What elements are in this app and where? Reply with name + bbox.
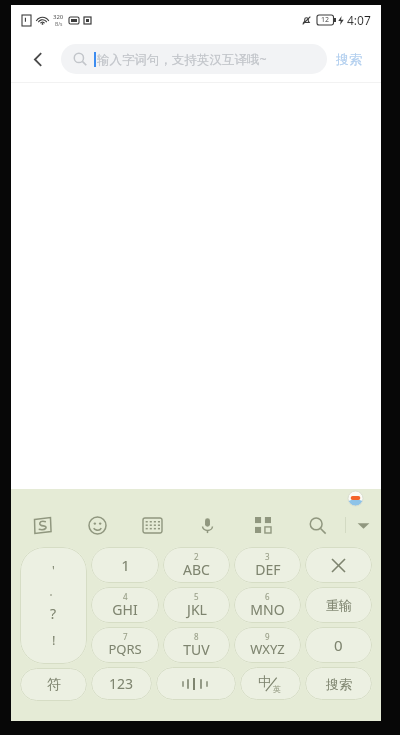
staticText: 中	[258, 673, 271, 689]
button[interactable]: PQRS	[91, 627, 159, 663]
button[interactable]: 搜索	[327, 45, 371, 73]
staticText: 2	[194, 551, 199, 562]
staticText: 9	[265, 631, 270, 642]
staticText: ABC	[183, 560, 210, 579]
button[interactable]: Search	[290, 507, 345, 543]
button[interactable]: 1	[91, 547, 159, 583]
staticText: 0	[334, 635, 343, 655]
button[interactable]: 符	[20, 668, 87, 701]
staticText: GHI	[112, 600, 138, 619]
button[interactable]: 0	[305, 627, 372, 663]
staticText: !	[52, 631, 56, 649]
button[interactable]: GHI	[91, 587, 159, 623]
staticText: DEF	[255, 560, 281, 579]
staticText: 重输	[326, 597, 352, 613]
staticText: 4	[123, 591, 128, 602]
staticText: 5	[194, 591, 199, 602]
button[interactable]: 输入字词句，支持英汉互译哦~	[61, 44, 327, 74]
staticText: 8	[194, 631, 199, 642]
staticText: WXYZ	[250, 640, 285, 658]
button[interactable]: Emoji	[70, 507, 125, 543]
staticText: 6	[265, 591, 270, 602]
staticText: ?	[50, 604, 57, 623]
button[interactable]: Voice input	[180, 507, 235, 543]
button[interactable]: JKL	[163, 587, 230, 623]
staticText: B/s	[55, 21, 63, 28]
button[interactable]: MNO	[234, 587, 301, 623]
button[interactable]: ABC	[163, 547, 230, 583]
button[interactable]: 搜索	[305, 667, 372, 700]
staticText: 搜索	[336, 51, 362, 67]
staticText: 4:07	[347, 12, 371, 28]
button[interactable]: Keyboard layout	[125, 507, 180, 543]
button[interactable]: Space	[156, 667, 236, 700]
staticText: 123	[109, 674, 134, 693]
button[interactable]: Punctuation	[20, 547, 87, 664]
button[interactable]: 重输	[305, 587, 372, 623]
button[interactable]: Sogou input	[15, 507, 70, 543]
staticText: 1	[121, 555, 130, 575]
staticText: 7	[123, 631, 128, 642]
staticText: '	[52, 562, 55, 578]
staticText: 符	[47, 676, 61, 694]
button[interactable]: Delete	[305, 547, 372, 583]
button[interactable]: Apps	[235, 507, 290, 543]
staticText: 320	[53, 13, 64, 21]
staticText: 输入字词句，支持英汉互译哦~	[97, 51, 267, 68]
button[interactable]: Sogou	[348, 491, 363, 506]
staticText: 搜索	[326, 676, 352, 692]
button[interactable]: DEF	[234, 547, 301, 583]
staticText: 3	[265, 551, 270, 562]
staticText: TUV	[183, 640, 210, 659]
button[interactable]: 123	[91, 667, 152, 700]
button[interactable]: TUV	[163, 627, 230, 663]
staticText: PQRS	[108, 640, 142, 658]
staticText: 英	[273, 684, 281, 694]
button[interactable]: WXYZ	[234, 627, 301, 663]
button[interactable]: Hide keyboard	[346, 507, 381, 543]
staticText: 。	[49, 586, 58, 597]
button[interactable]: 中英切换	[240, 667, 301, 700]
staticText: 12	[321, 15, 330, 25]
staticText: MNO	[250, 600, 285, 619]
staticText: JKL	[187, 600, 207, 619]
button[interactable]: Back	[21, 42, 55, 76]
